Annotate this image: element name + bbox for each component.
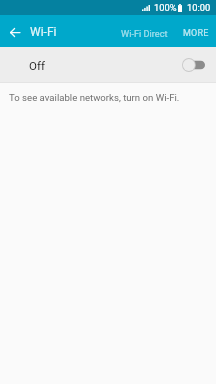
other: Battery full: [178, 4, 182, 12]
button[interactable]: Off: [0, 47, 216, 82]
button[interactable]: Wi-Fi Direct: [115, 18, 174, 45]
staticText: Wi-Fi Direct: [121, 28, 168, 39]
staticText: MORE: [183, 28, 209, 39]
button[interactable]: MORE: [174, 18, 216, 45]
staticText: Off: [29, 59, 45, 72]
other: Mobile signal: [142, 5, 150, 11]
staticText: Wi-Fi: [30, 25, 57, 39]
staticText: 100%: [154, 2, 177, 13]
staticText: To see available networks, turn on Wi-Fi…: [9, 92, 180, 103]
staticText: 10:00: [187, 2, 211, 13]
button[interactable]: Navigate up: [0, 15, 31, 47]
